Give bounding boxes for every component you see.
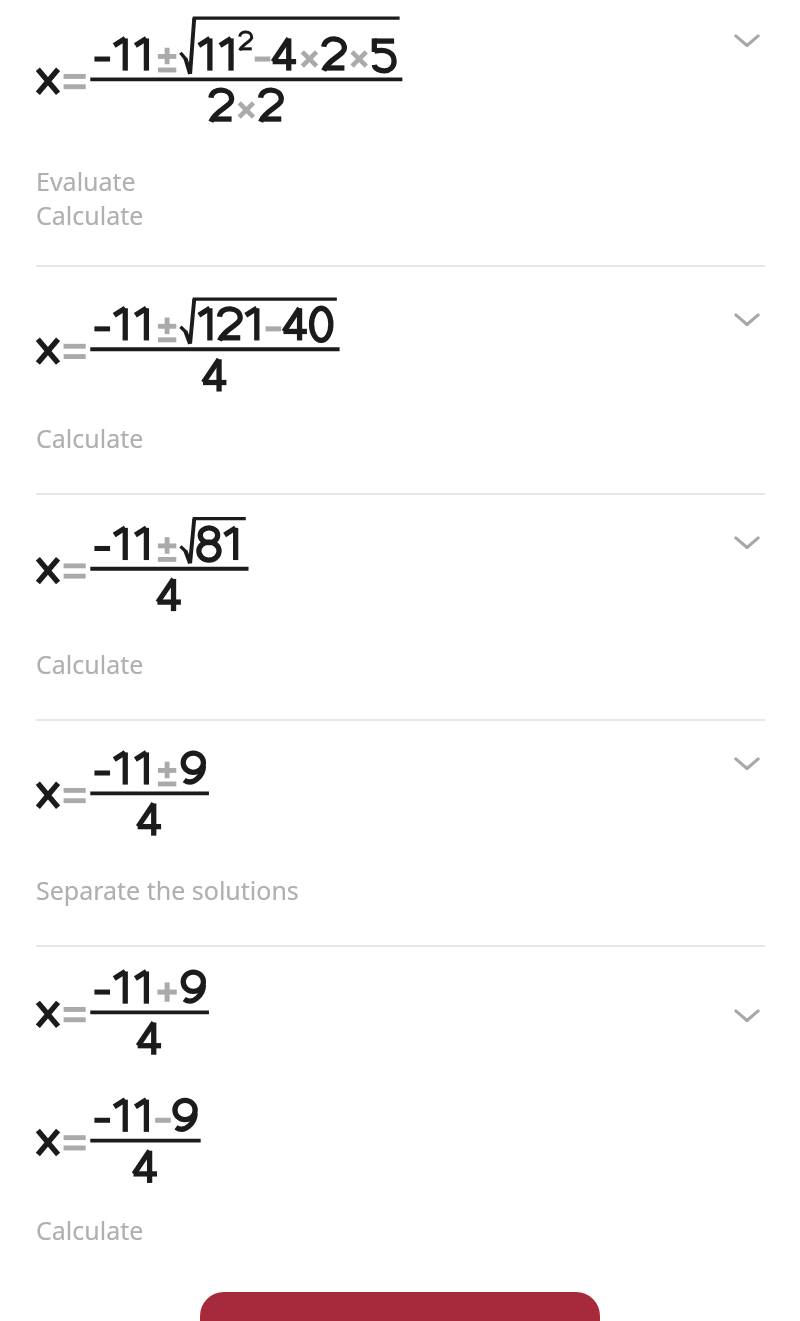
button[interactable]: Expand step <box>715 983 779 1047</box>
button[interactable]: Calculate <box>36 1213 144 1247</box>
button[interactable]: Expand step <box>715 510 779 574</box>
button[interactable]: Calculate <box>36 198 144 232</box>
button[interactable]: Separate the solutions <box>36 873 299 907</box>
button[interactable]: Calculate <box>36 647 144 681</box>
button[interactable]: Expand step <box>715 731 779 795</box>
button[interactable]: Primary action <box>200 1292 600 1321</box>
button[interactable]: Evaluate <box>36 164 136 198</box>
button[interactable]: Calculate <box>36 421 144 455</box>
button[interactable]: Expand step <box>715 287 779 351</box>
button[interactable]: Expand step <box>715 8 779 72</box>
